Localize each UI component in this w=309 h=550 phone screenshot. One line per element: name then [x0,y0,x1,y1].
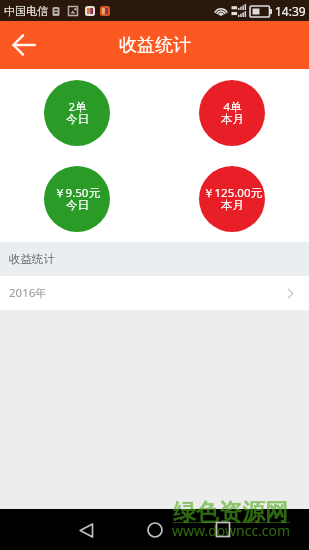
button[interactable]: 2单 [44,80,110,146]
staticText: 14:39 [275,3,306,19]
staticText: 绿色资源网 [173,498,288,527]
staticText: 收益统计 [9,252,55,266]
staticText: 今日 [66,112,89,126]
staticText: 2016年 [9,285,47,301]
staticText: 收益统计 [119,34,191,57]
button[interactable]: 2016年 [0,276,309,310]
button[interactable]: ￥9.50元 [44,166,110,232]
staticText: www.downcc.com [172,521,291,540]
staticText: 中国电信 [4,4,48,18]
button[interactable]: Back [0,21,48,69]
button[interactable]: 4单 [199,80,265,146]
staticText: 2单 [68,99,87,115]
staticText: 本月 [221,198,244,212]
button[interactable]: ￥125.00元 [199,166,265,232]
button[interactable]: Recent apps [205,511,241,547]
staticText: 4单 [223,99,242,115]
staticText: 本月 [221,112,244,126]
staticText: ￥125.00元 [203,185,262,201]
button[interactable]: Home [137,512,173,548]
staticText: 今日 [66,198,89,212]
button[interactable]: Back [68,512,104,548]
staticText: ￥9.50元 [54,185,100,201]
